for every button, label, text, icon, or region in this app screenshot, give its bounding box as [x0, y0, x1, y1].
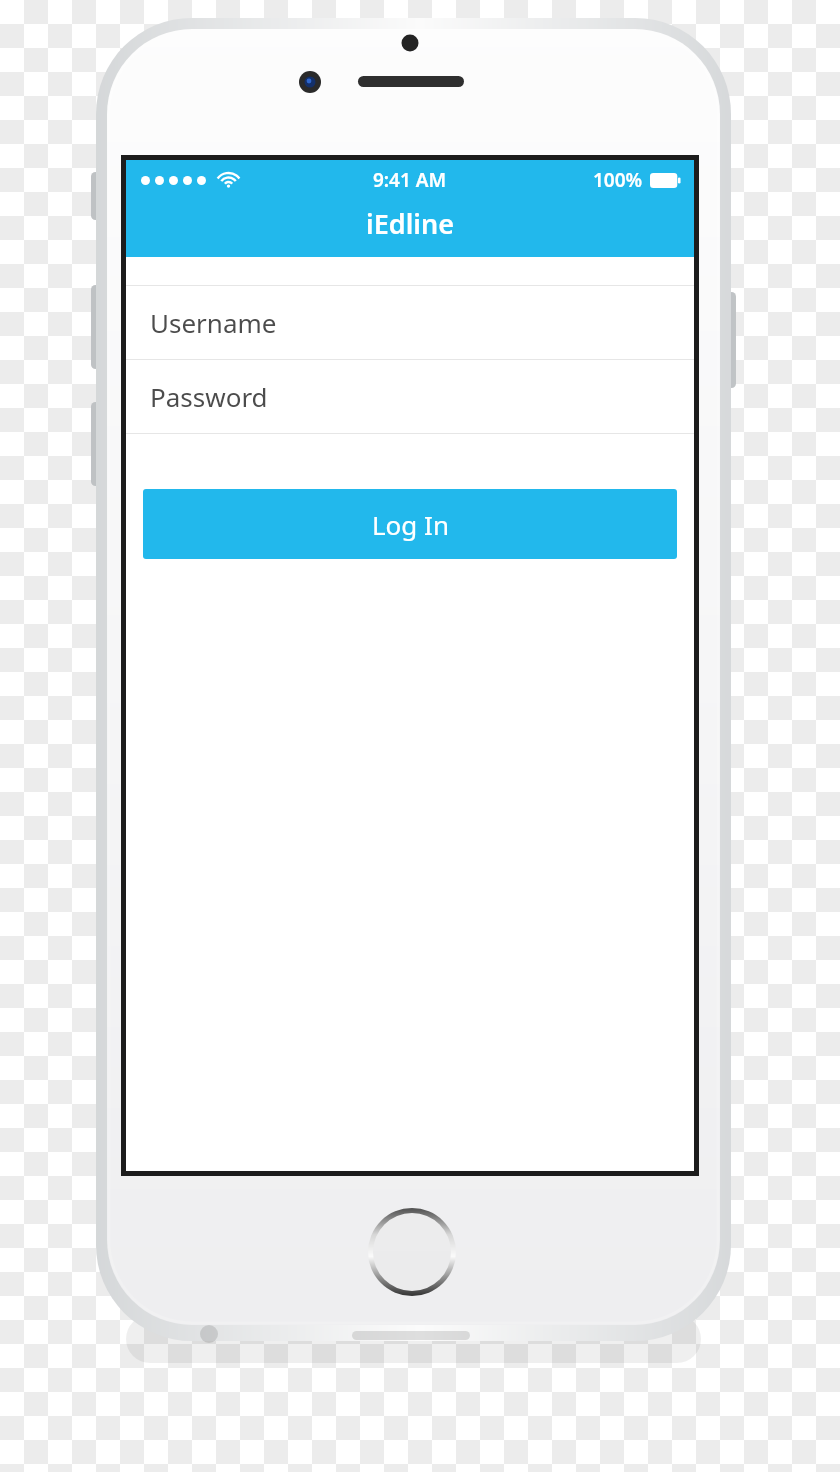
button[interactable]: Username	[126, 286, 694, 359]
other: Wi-Fi	[218, 172, 239, 188]
button[interactable]: Log In	[143, 489, 677, 559]
button[interactable]: Password	[126, 360, 694, 433]
staticText: iEdline	[366, 205, 454, 242]
staticText: Log In	[372, 507, 449, 542]
staticText: Username	[150, 305, 277, 340]
staticText: 100%	[593, 167, 643, 193]
staticText: 9:41 AM	[373, 167, 447, 193]
staticText: Password	[150, 379, 268, 414]
other: Battery full	[650, 173, 681, 188]
